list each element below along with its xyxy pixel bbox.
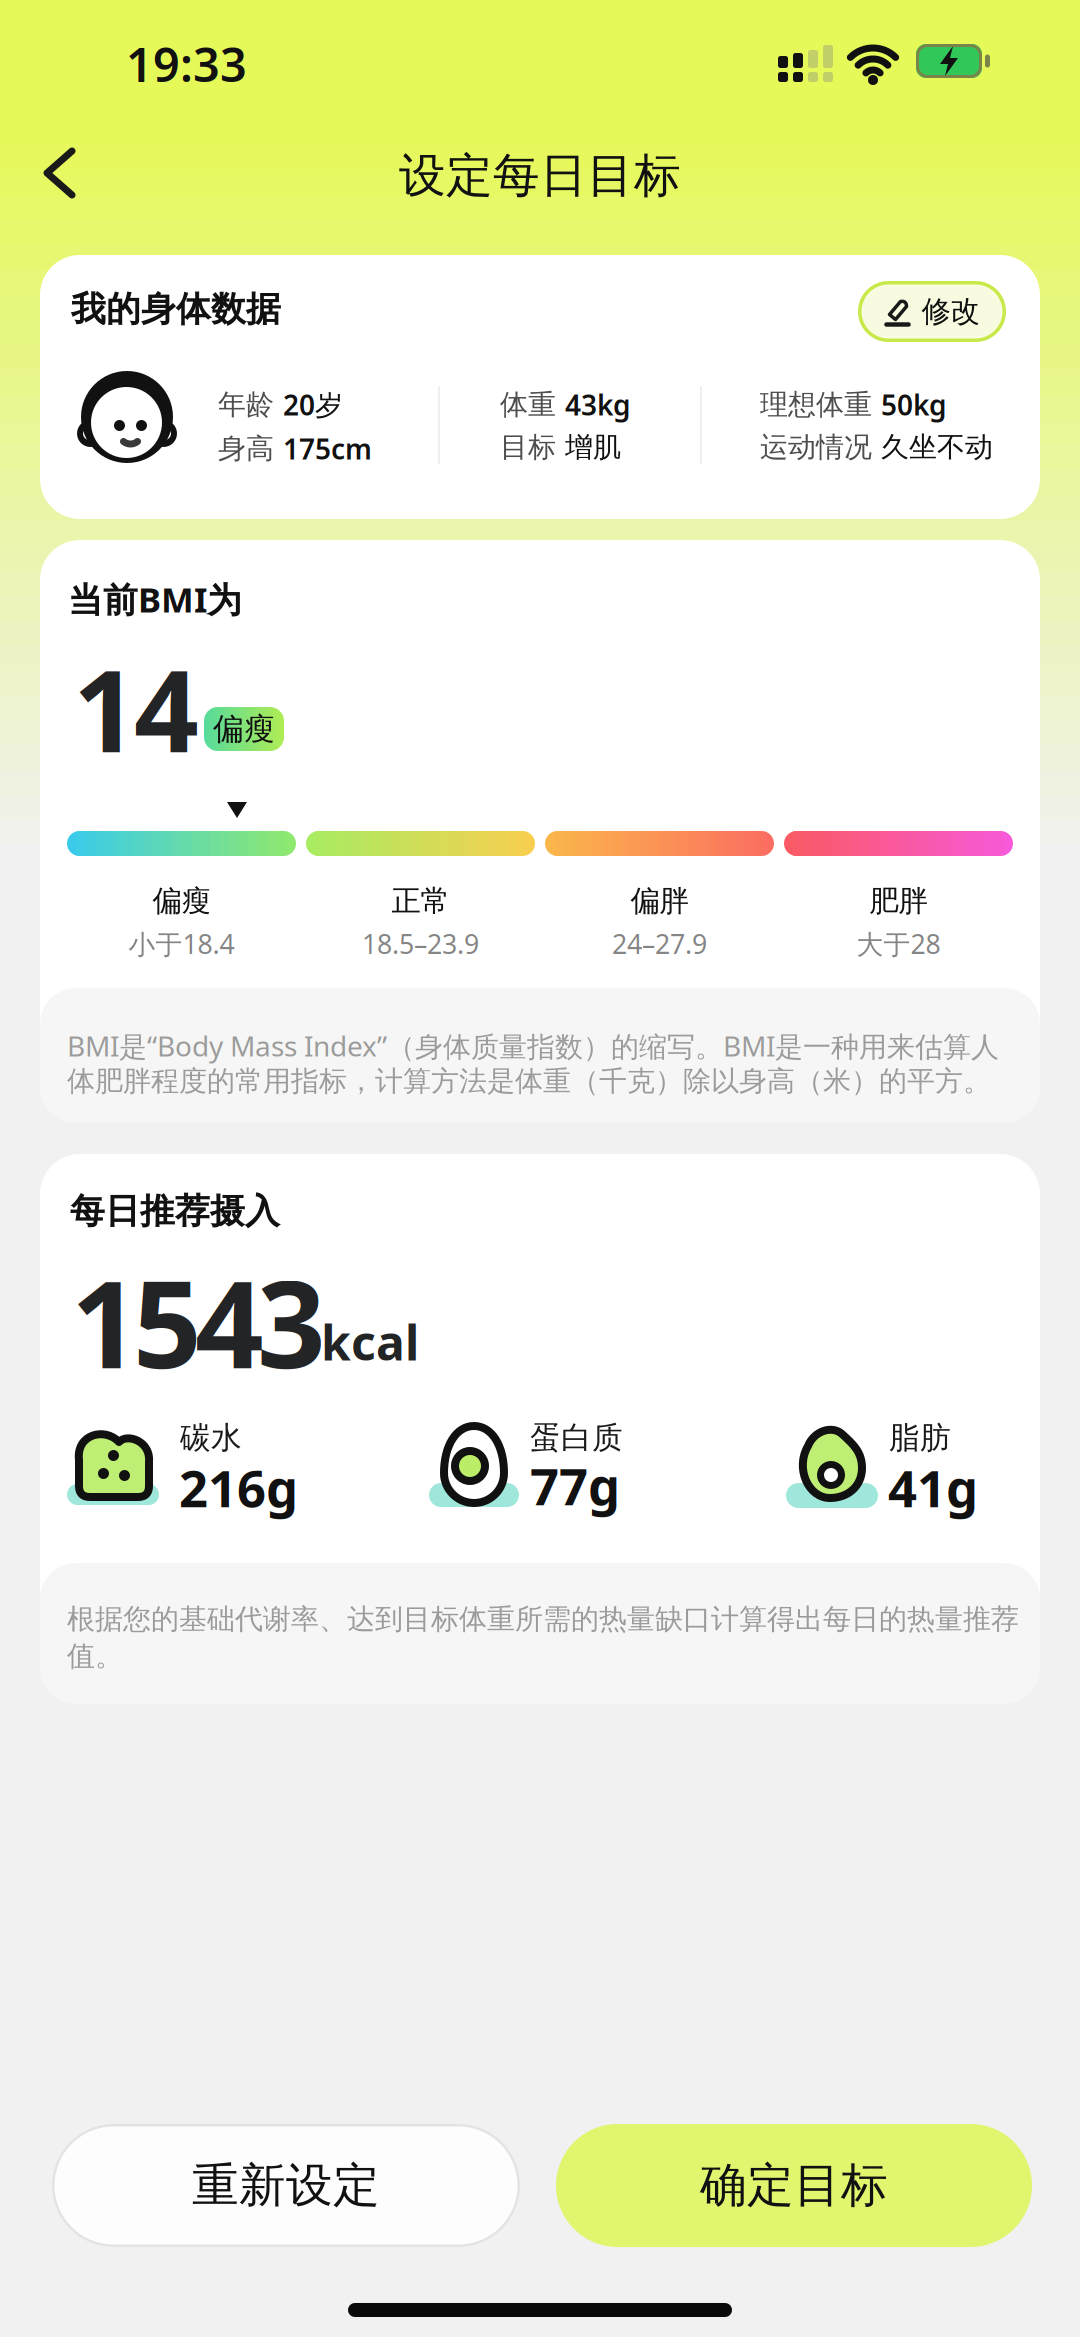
staticText: 20岁 xyxy=(283,386,343,423)
staticText: 脂肪 xyxy=(889,1419,951,1457)
staticText: 216g xyxy=(179,1454,298,1521)
staticText: 确定目标 xyxy=(700,2157,888,2214)
staticText: 偏胖 xyxy=(630,883,688,919)
staticText: 77g xyxy=(530,1452,620,1519)
button[interactable]: 重新设定 xyxy=(52,2124,520,2247)
staticText: 重新设定 xyxy=(192,2157,380,2214)
staticText: 小于18.4 xyxy=(128,926,234,961)
staticText: 大于28 xyxy=(856,926,940,961)
staticText: 根据您的基础代谢率、达到目标体重所需的热量缺口计算得出每日的热量推荐 xyxy=(67,1602,1019,1636)
staticText: 175cm xyxy=(283,430,372,467)
staticText: 18.5–23.9 xyxy=(362,926,479,961)
staticText: 50kg xyxy=(881,386,947,423)
staticText: 值。 xyxy=(67,1639,123,1673)
staticText: 正常 xyxy=(391,883,449,919)
staticText: 每日推荐摄入 xyxy=(70,1190,280,1233)
staticText: 修改 xyxy=(921,293,979,329)
staticText: 目标 xyxy=(500,430,556,464)
button[interactable]: 确定目标 xyxy=(556,2124,1032,2247)
staticText: 偏瘦 xyxy=(213,710,275,748)
button[interactable]: Back xyxy=(42,147,77,199)
staticText: 体重 xyxy=(500,387,556,422)
staticText: 肥胖 xyxy=(869,883,927,919)
staticText: 当前BMI为 xyxy=(68,576,242,622)
staticText: BMI是“Body Mass Index”（身体质量指数）的缩写。BMI是一种用… xyxy=(67,1027,999,1064)
staticText: 41g xyxy=(888,1454,978,1521)
staticText: 偏瘦 xyxy=(152,883,210,919)
staticText: 久坐不动 xyxy=(881,430,993,464)
staticText: kcal xyxy=(321,1310,419,1374)
staticText: 理想体重 xyxy=(760,387,872,422)
staticText: 身高 xyxy=(218,431,274,466)
staticText: 43kg xyxy=(565,386,631,423)
staticText: 设定每日目标 xyxy=(399,147,681,204)
staticText: 14 xyxy=(73,633,199,783)
staticText: 1543 xyxy=(71,1242,326,1401)
staticText: 19:33 xyxy=(126,33,247,95)
staticText: 24–27.9 xyxy=(612,926,707,961)
button[interactable]: 修改 xyxy=(858,281,1006,342)
staticText: 年龄 xyxy=(218,387,274,422)
staticText: 碳水 xyxy=(180,1419,242,1457)
staticText: 我的身体数据 xyxy=(71,288,281,331)
staticText: 增肌 xyxy=(565,430,621,464)
staticText: 蛋白质 xyxy=(530,1419,623,1457)
staticText: 运动情况 xyxy=(760,430,872,464)
staticText: 体肥胖程度的常用指标，计算方法是体重（千克）除以身高（米）的平方。 xyxy=(67,1064,991,1098)
